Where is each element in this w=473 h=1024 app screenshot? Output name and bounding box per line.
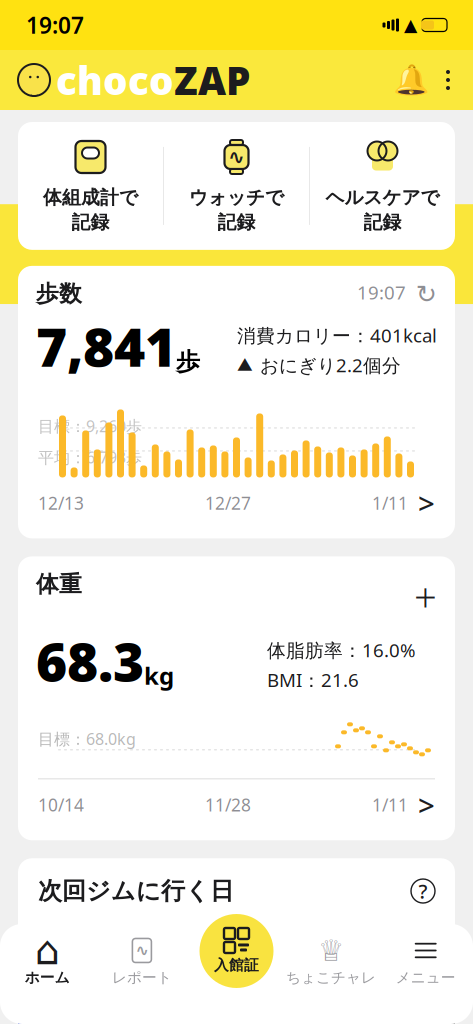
staticText: ⌂ — [35, 928, 60, 973]
staticText: メニュー — [396, 968, 456, 986]
staticText: ∿ — [228, 146, 245, 168]
staticText: kg — [144, 659, 174, 691]
staticText: 次回ジムに行く日 — [38, 876, 234, 906]
button[interactable]: Weight details — [408, 785, 435, 824]
staticText: ▲ — [404, 15, 417, 35]
staticText: 体脂肪率：16.0% — [267, 638, 416, 662]
staticText: 入館証 — [214, 956, 259, 974]
staticText: 体重 — [36, 570, 82, 598]
staticText: 19:07 — [357, 280, 406, 305]
button[interactable]: ⌂ — [0, 927, 95, 986]
staticText: 19:07 — [26, 10, 84, 40]
staticText: 消費カロリー：401kcal — [237, 323, 437, 348]
staticText: ∿ — [135, 941, 148, 960]
staticText: choco — [56, 54, 174, 106]
staticText: 記録 — [217, 211, 255, 234]
staticText: ーー月ーー日 — [38, 920, 230, 959]
staticText: 1/11 — [372, 793, 408, 816]
staticText: 12/13 — [38, 491, 84, 514]
staticText: ↻ — [416, 280, 437, 309]
staticText: 12/27 — [205, 491, 251, 514]
button[interactable]: Step details — [408, 483, 435, 522]
staticText: BMI：21.6 — [267, 667, 359, 692]
staticText: 歩 — [176, 347, 200, 376]
staticText: 歩数 — [36, 280, 82, 308]
staticText: ウォッチで — [189, 186, 284, 209]
staticText: 目標：68.0kg — [38, 728, 136, 749]
staticText: + — [414, 570, 437, 623]
button[interactable]: 設定 — [395, 927, 435, 952]
staticText: 体組成計で — [43, 186, 138, 209]
button[interactable]: ∿ — [164, 122, 309, 250]
staticText: 平均：6,793歩 — [38, 447, 142, 468]
staticText: > — [418, 483, 435, 522]
button[interactable]: More options — [431, 58, 465, 102]
staticText: 11/28 — [205, 793, 251, 816]
staticText: ホーム — [25, 968, 70, 986]
button[interactable]: ヘルスケアで — [310, 122, 455, 250]
staticText: 目標：9,260歩 — [38, 415, 142, 437]
staticText: ‿ — [30, 81, 37, 97]
staticText: ? — [418, 878, 427, 904]
staticText: 68.3 — [36, 625, 144, 696]
staticText: 1/11 — [372, 491, 408, 514]
button[interactable]: ♕ — [284, 927, 378, 986]
staticText: レポート — [112, 968, 172, 986]
button[interactable]: Notifications — [391, 58, 431, 102]
staticText: ⛰ — [237, 356, 253, 374]
staticText: ちょこチャレ — [286, 968, 376, 986]
button[interactable]: Add weight entry — [414, 570, 437, 623]
button[interactable]: 入館証 — [199, 914, 273, 988]
staticText: 設定 — [395, 927, 435, 952]
button[interactable]: ∿ — [95, 927, 189, 986]
staticText: 記録 — [363, 211, 401, 234]
staticText: > — [418, 785, 435, 824]
staticText: 🔔 — [392, 63, 429, 97]
staticText: おにぎり2.2個分 — [260, 353, 401, 377]
staticText: 10/14 — [38, 793, 84, 816]
staticText: ♕ — [318, 934, 344, 967]
button[interactable]: 体組成計で — [18, 122, 163, 250]
staticText: 記録 — [71, 211, 109, 234]
button[interactable]: Refresh steps — [406, 280, 437, 309]
button[interactable]: Help — [411, 879, 435, 903]
staticText: ZAP — [174, 54, 250, 106]
staticText: 7,841 — [36, 311, 176, 381]
staticText: ヘルスケアで — [325, 186, 439, 209]
button[interactable]: メニュー — [378, 927, 473, 986]
